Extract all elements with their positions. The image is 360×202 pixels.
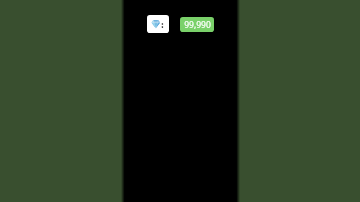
staticText: 99,990 bbox=[184, 19, 211, 31]
button[interactable]: 99,990 bbox=[180, 17, 214, 32]
button[interactable]: Gem balance bbox=[147, 15, 169, 33]
button[interactable]: Play or pause video bbox=[121, 0, 240, 202]
